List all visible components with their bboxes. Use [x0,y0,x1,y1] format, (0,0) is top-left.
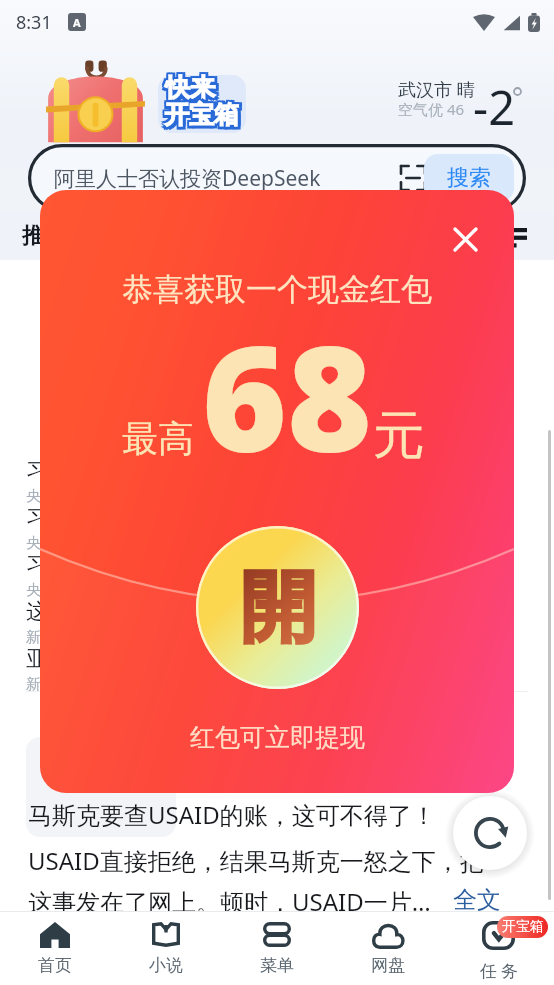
button[interactable]: 习近平会见泰国总理 [0,504,554,551]
staticText: 快来 [164,71,214,102]
button[interactable]: 首页 [0,911,110,985]
staticText: 武汉市 晴 [398,77,475,102]
button[interactable]: 菜单 [221,911,332,985]
staticText: 快来 [163,75,213,106]
staticText: 习近平向全国人民拜年 [26,551,246,579]
staticText: 马斯克要查USAID的账，这可不得了！ [28,798,436,831]
staticText: 开宝箱 [165,100,240,131]
staticText: 快来 [168,72,218,103]
staticText: 开宝箱 [163,100,238,131]
button[interactable]: 这事发在了网上引热议 [0,598,554,645]
staticText: 68 [202,297,372,494]
staticText: USAID直接拒绝，结果马斯克一怒之下，把 [28,844,484,877]
staticText: 最高 [122,416,194,461]
staticText: 央视新闻 [26,581,86,598]
button[interactable]: Menu [502,221,532,251]
button[interactable]: 习近平向全国人民拜年 [0,551,554,598]
staticText: 小说 [149,955,183,976]
button[interactable]: Close [447,221,483,257]
button[interactable]: Scan [396,161,430,195]
staticText: 开宝箱 [163,98,238,129]
staticText: 开宝箱 [164,102,239,133]
staticText: A [73,15,81,30]
staticText: 快来 [166,73,216,104]
staticText: 这事发在了网上引热议 [26,598,246,626]
button[interactable]: 习近平同普京通电话 [0,457,554,504]
staticText: 央视新闻 [26,487,86,504]
button[interactable] [28,144,526,212]
staticText: 开宝箱 [167,97,242,128]
staticText: 开宝箱 [162,102,237,133]
staticText: 开宝箱 [162,97,237,128]
staticText: 快来 [165,75,215,106]
staticText: -2 [473,75,516,139]
button[interactable]: 任务 [443,911,554,985]
staticText: 亚冬会开幕式精彩瞬间 [26,645,246,673]
staticText: 新华社 [26,675,71,692]
staticText: 红包可立即提现 [190,722,365,753]
staticText: 快来 [163,70,213,101]
button[interactable]: 小说 [110,911,221,985]
staticText: 开宝箱 [164,97,239,128]
button[interactable]: 网盘 [332,911,443,985]
staticText: 空气优 46 [398,99,465,119]
staticText: 菜单 [260,955,294,976]
button[interactable]: 亚冬会开幕式精彩瞬间 [0,645,554,692]
button[interactable]: 推荐 [22,222,66,250]
staticText: 快来 [165,70,215,101]
staticText: 快来 [164,73,214,104]
staticText: 这事发在了网上。顿时，USAID一片… [28,885,431,918]
staticText: 快来 [166,71,216,102]
staticText: 习近平同普京通电话 [26,457,224,485]
staticText: 快来 [165,72,215,103]
staticText: 网盘 [371,955,405,976]
staticText: 恭喜获取一个现金红包 [122,270,432,309]
staticText: 新华社 [26,628,71,645]
staticText: 阿里人士否认投资DeepSeek [54,164,321,193]
staticText: 开宝箱 [167,99,242,130]
button[interactable] [158,75,246,133]
staticText: 搜索 [447,164,491,192]
staticText: 開 [240,560,316,656]
staticText: 元 [373,403,425,469]
button[interactable]: 全文 [453,885,501,915]
staticText: 任务 [478,961,520,982]
staticText: 开宝箱 [167,102,242,133]
staticText: 开宝箱 [162,99,237,130]
staticText: 8:31 [16,10,52,35]
staticText: 开宝箱 [164,99,239,130]
staticText: 央视新闻 [26,534,86,551]
button[interactable]: Refresh [453,796,527,870]
staticText: 快来 [168,75,218,106]
staticText: 开宝箱 [502,918,544,936]
button[interactable]: 開 [196,526,359,689]
button[interactable]: 武汉市 晴 [380,60,554,130]
staticText: 快来 [168,70,218,101]
staticText: 快来 [163,72,213,103]
staticText: 首页 [38,955,72,976]
staticText: 开宝箱 [165,98,240,129]
button[interactable]: 搜索 [424,154,514,202]
staticText: 习近平会见泰国总理 [26,504,224,532]
